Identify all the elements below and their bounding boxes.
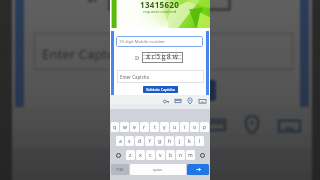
staticText: D [135,54,139,61]
staticText: y [163,124,166,131]
button[interactable]: z [126,150,135,160]
button[interactable]: h [165,136,174,146]
staticText: u [173,124,177,131]
button[interactable]: q [111,122,119,132]
button[interactable]: Go [187,164,209,175]
button[interactable]: f [145,136,154,146]
staticText: c [149,152,152,159]
staticText: x c 5 g 8 w [120,0,219,8]
button[interactable]: u [170,122,179,132]
button[interactable]: Passwords [162,97,170,105]
staticText: i [184,124,186,131]
staticText: Enter Captcha [42,44,129,62]
button[interactable]: d [135,136,144,146]
button[interactable]: Backspace [196,150,209,160]
button[interactable]: o [190,122,199,132]
staticText: e [133,124,136,131]
staticText: h [168,138,172,145]
button[interactable]: e [130,122,139,132]
staticText: x c 5 g 8 w [146,52,179,62]
button[interactable]: Keyboard [276,113,300,137]
staticText: requests resolved [143,9,177,14]
button[interactable]: ?123 [111,164,129,175]
button[interactable]: Validate Captcha [111,80,216,101]
button[interactable]: j [175,136,184,146]
button[interactable]: c [146,150,155,160]
staticText: k [188,138,191,145]
staticText: b [169,152,173,159]
staticText: space [153,167,163,172]
button[interactable]: Shift [111,150,125,160]
staticText: r [143,124,146,131]
staticText: s [128,138,131,145]
button[interactable]: n [176,150,185,160]
staticText: a [119,138,122,145]
staticText: z [129,152,132,159]
button[interactable]: i [180,122,189,132]
button[interactable]: y [160,122,169,132]
staticText: v [159,152,162,159]
button[interactable]: Payment methods [174,97,182,105]
button[interactable]: Keyboard [198,97,206,105]
staticText: p [203,124,207,131]
staticText: Enter Captcha [120,74,149,80]
staticText: x [139,152,142,159]
button[interactable]: b [166,150,175,160]
staticText: f [149,138,151,145]
button[interactable]: Enter Captcha [42,32,294,71]
staticText: w [123,124,127,131]
button[interactable]: x [136,150,145,160]
button[interactable]: Passwords [168,113,192,137]
button[interactable]: 10 digit Mobile number [119,36,203,47]
button[interactable]: r [140,122,149,132]
button[interactable]: t [150,122,159,132]
button[interactable]: Addresses [240,113,264,137]
button[interactable]: a [116,136,124,146]
staticText: d [138,138,142,145]
button[interactable]: space [130,164,186,175]
staticText: o [193,124,197,131]
staticText: m [188,152,193,159]
staticText: ?123 [116,167,124,172]
staticText: q [113,124,117,131]
button[interactable]: m [186,150,195,160]
staticText: j [179,138,181,145]
staticText: l [199,138,201,145]
button[interactable]: p [200,122,209,132]
button[interactable]: s [125,136,134,146]
staticText: Validate Captcha [120,83,207,98]
staticText: n [179,152,183,159]
staticText: Validate Captcha [146,87,175,92]
staticText: 13415620 [140,0,180,10]
button[interactable]: v [156,150,165,160]
staticText: t [154,124,156,131]
button[interactable]: Addresses [186,97,194,105]
button[interactable]: Payment methods [204,113,228,137]
button[interactable]: Validate Captcha [143,86,178,93]
staticText: D [87,0,99,5]
button[interactable]: g [155,136,164,146]
staticText: 10 digit Mobile number [119,39,166,45]
button[interactable]: Enter Captcha [120,70,204,83]
button[interactable]: w [120,122,129,132]
staticText: g [158,138,162,145]
button[interactable]: l [195,136,204,146]
button[interactable]: k [185,136,194,146]
